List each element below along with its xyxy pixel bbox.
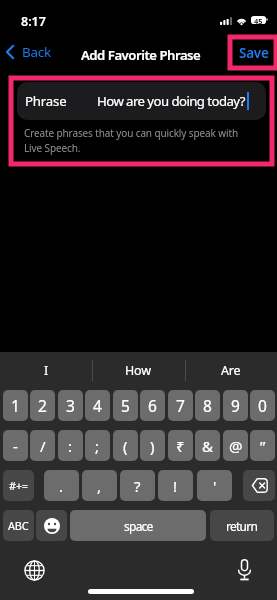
staticText: 8:17 bbox=[21, 13, 46, 30]
staticText: . bbox=[59, 476, 64, 496]
button[interactable]: How bbox=[92, 352, 184, 390]
button[interactable]: return bbox=[210, 510, 274, 541]
staticText: Save bbox=[239, 44, 269, 62]
button[interactable]: ABC bbox=[3, 510, 34, 541]
staticText: ; bbox=[95, 436, 100, 456]
staticText: Add Favorite Phrase bbox=[81, 46, 201, 64]
button[interactable]: ₹ bbox=[168, 430, 193, 461]
button[interactable]: Back bbox=[6, 40, 51, 64]
button[interactable]: , bbox=[82, 470, 117, 501]
button[interactable]: 9 bbox=[223, 390, 248, 421]
staticText: 1 bbox=[11, 395, 20, 416]
staticText: 8 bbox=[203, 395, 212, 416]
staticText: Are bbox=[221, 362, 241, 379]
staticText: 0 bbox=[258, 395, 267, 416]
button[interactable]: ' bbox=[197, 470, 232, 501]
button[interactable]: delete bbox=[243, 470, 275, 501]
button[interactable]: emoji bbox=[36, 510, 67, 541]
staticText: : bbox=[68, 436, 73, 456]
staticText: ABC bbox=[8, 518, 29, 533]
staticText: 7 bbox=[176, 395, 185, 416]
staticText: 9 bbox=[231, 395, 240, 416]
staticText: Back bbox=[22, 43, 51, 61]
button[interactable]: ; bbox=[85, 430, 110, 461]
staticText: @ bbox=[229, 436, 243, 456]
staticText: / bbox=[40, 436, 46, 456]
staticText: ! bbox=[173, 476, 178, 496]
button[interactable]: 6 bbox=[140, 390, 165, 421]
button[interactable]: & bbox=[195, 430, 220, 461]
button[interactable]: I bbox=[0, 352, 92, 390]
staticText: How are you doing today? bbox=[97, 92, 245, 110]
staticText: Phrase bbox=[25, 92, 67, 110]
button[interactable]: #+= bbox=[3, 470, 34, 501]
button[interactable]: / bbox=[30, 430, 55, 461]
button[interactable]: 2 bbox=[30, 390, 55, 421]
button[interactable]: ? bbox=[120, 470, 155, 501]
staticText: 6 bbox=[148, 395, 157, 416]
staticText: Create phrases that you can quickly spea… bbox=[24, 126, 238, 155]
staticText: ' bbox=[213, 476, 217, 496]
button[interactable]: ! bbox=[158, 470, 193, 501]
button[interactable]: ” bbox=[250, 430, 275, 461]
staticText: 3 bbox=[66, 395, 75, 416]
staticText: ( bbox=[123, 436, 128, 456]
button[interactable]: Are bbox=[185, 352, 277, 390]
button[interactable]: Dictation bbox=[237, 559, 252, 581]
staticText: 5 bbox=[121, 395, 130, 416]
button[interactable]: space bbox=[70, 510, 206, 541]
button[interactable]: ( bbox=[113, 430, 138, 461]
button[interactable]: Switch keyboard bbox=[24, 560, 45, 581]
button[interactable]: - bbox=[3, 430, 28, 461]
staticText: & bbox=[202, 436, 213, 456]
staticText: How bbox=[125, 362, 151, 379]
button[interactable]: 8 bbox=[195, 390, 220, 421]
staticText: I bbox=[44, 362, 49, 379]
button[interactable]: 3 bbox=[58, 390, 83, 421]
staticText: ₹ bbox=[176, 436, 185, 456]
button[interactable]: . bbox=[44, 470, 79, 501]
button[interactable]: Save bbox=[230, 37, 276, 68]
staticText: 45 bbox=[254, 16, 263, 24]
staticText: space bbox=[124, 518, 153, 534]
button[interactable]: @ bbox=[223, 430, 248, 461]
staticText: - bbox=[13, 436, 18, 456]
staticText: 4 bbox=[93, 395, 102, 416]
staticText: ” bbox=[260, 436, 266, 456]
button[interactable]: 4 bbox=[85, 390, 110, 421]
staticText: , bbox=[97, 476, 102, 496]
staticText: 2 bbox=[38, 395, 47, 416]
button[interactable]: : bbox=[58, 430, 83, 461]
button[interactable]: ) bbox=[140, 430, 165, 461]
button[interactable]: 7 bbox=[168, 390, 193, 421]
staticText: ? bbox=[134, 476, 141, 496]
button[interactable]: Phrase bbox=[17, 82, 266, 120]
button[interactable]: 1 bbox=[3, 390, 28, 421]
button[interactable]: 5 bbox=[113, 390, 138, 421]
staticText: #+= bbox=[9, 478, 28, 493]
staticText: ) bbox=[150, 436, 155, 456]
staticText: return bbox=[226, 518, 258, 534]
button[interactable]: 0 bbox=[250, 390, 275, 421]
